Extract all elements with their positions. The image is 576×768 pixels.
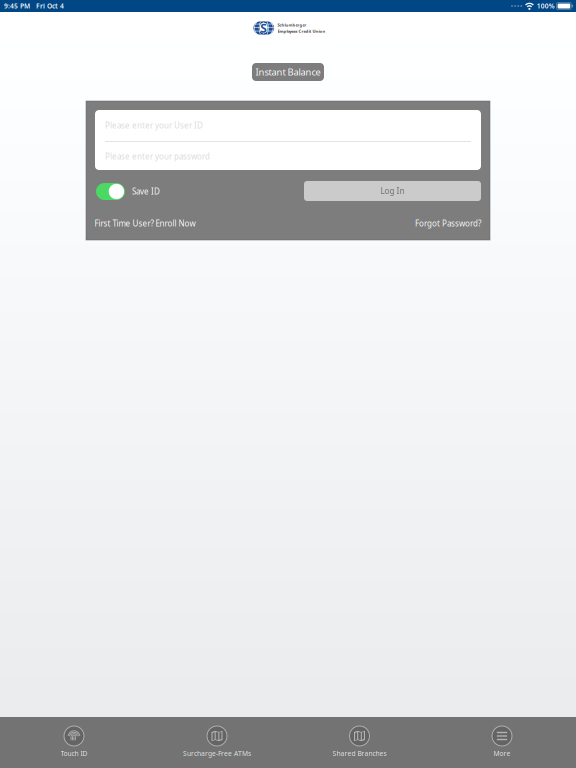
- staticText: More: [493, 749, 510, 758]
- staticText: Schlumberger: [277, 22, 306, 27]
- button[interactable]: Touch ID: [4, 717, 144, 768]
- staticText: Surcharge-Free ATMs: [183, 749, 251, 758]
- button[interactable]: Log In: [304, 181, 481, 201]
- button[interactable]: Instant Balance: [252, 63, 324, 81]
- staticText: Instant Balance: [255, 66, 320, 78]
- staticText: Save ID: [132, 186, 160, 197]
- staticText: Touch ID: [60, 749, 87, 758]
- staticText: Please enter your password: [105, 151, 210, 162]
- staticText: First Time User? Enroll Now: [94, 218, 195, 229]
- button[interactable]: Shared Branches: [289, 717, 429, 768]
- staticText: Please enter your User ID: [105, 120, 203, 131]
- button[interactable]: Forgot Password?: [415, 218, 481, 229]
- staticText: Shared Branches: [332, 749, 386, 758]
- button[interactable]: Surcharge-Free ATMs: [147, 717, 287, 768]
- staticText: Fri Oct 4: [36, 2, 64, 10]
- staticText: 9:45 PM: [4, 2, 30, 10]
- staticText: Log In: [380, 186, 404, 196]
- button[interactable]: Save ID: [96, 183, 160, 200]
- staticText: Employees Credit Union: [277, 28, 325, 34]
- staticText: 100%: [537, 2, 555, 10]
- button[interactable]: First Time User? Enroll Now: [94, 218, 195, 229]
- button[interactable]: More: [432, 717, 572, 768]
- staticText: Forgot Password?: [415, 218, 481, 229]
- staticText: S: [260, 20, 267, 36]
